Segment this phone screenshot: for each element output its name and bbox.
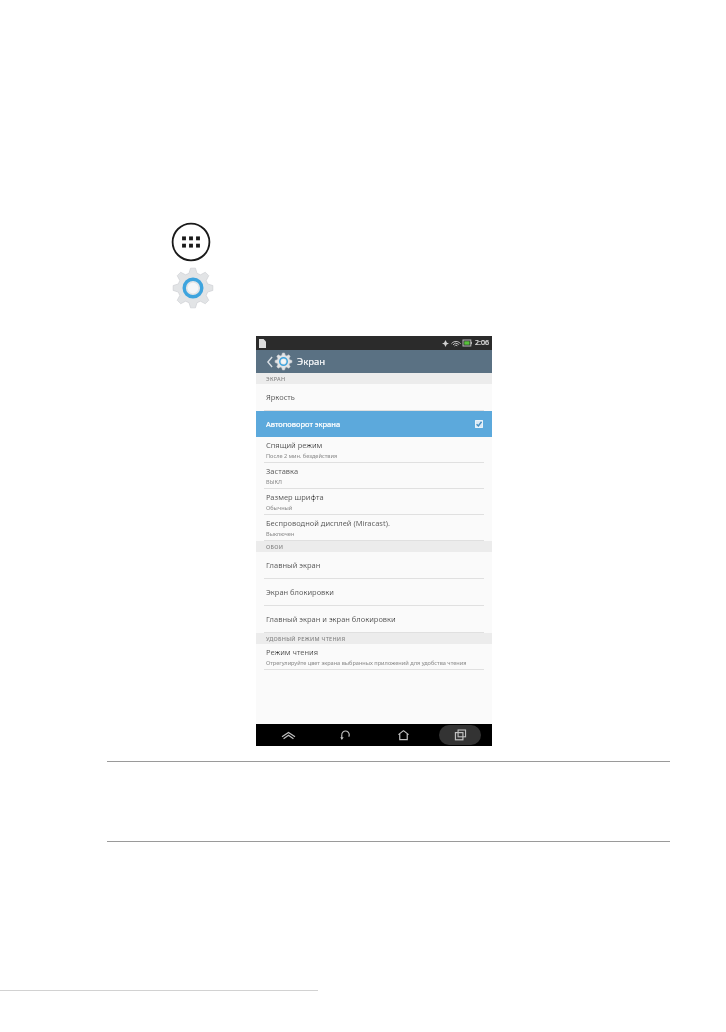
staticText: Размер шрифта [266,492,324,502]
button[interactable]: Recent apps [434,724,486,746]
staticText: Яркость [266,392,295,402]
staticText: ОБОИ [266,543,284,550]
staticText: ВЫКЛ [266,478,282,486]
staticText: Режим чтения [266,647,319,657]
button[interactable]: Спящий режим [256,437,492,463]
staticText: Заставка [266,466,299,476]
button[interactable]: Главный экран и экран блокировки [256,606,492,633]
button[interactable]: Settings [173,268,213,308]
button[interactable]: Quick settings [262,724,314,746]
staticText: Главный экран [266,560,321,570]
staticText: После 2 мин. бездействия [266,452,338,460]
staticText: Выключен [266,530,295,538]
staticText: Обычный [266,504,293,512]
button[interactable]: Яркость [256,384,492,411]
button[interactable]: All apps [171,222,211,262]
staticText: Автоповорот экрана [266,419,475,429]
staticText: УДОБНЫЙ РЕЖИМ ЧТЕНИЯ [266,635,346,642]
staticText: Экран [297,355,326,368]
button[interactable]: Auto-rotate enabled [475,420,483,428]
button[interactable]: Беспроводной дисплей (Miracast). [256,515,492,541]
staticText: Экран блокировки [266,587,334,597]
button[interactable]: Заставка [256,463,492,489]
button[interactable]: Back [319,724,371,746]
staticText: Спящий режим [266,440,323,450]
staticText: ЭКРАН [266,375,286,382]
staticText: Главный экран и экран блокировки [266,614,396,624]
button[interactable]: Главный экран [256,552,492,579]
button[interactable]: Автоповорот экрана [256,411,492,437]
staticText: Отрегулируйте цвет экрана выбранных прил… [266,659,467,667]
button[interactable]: Режим чтения [256,644,492,670]
staticText: Беспроводной дисплей (Miracast). [266,518,390,528]
button[interactable]: Размер шрифта [256,489,492,515]
button[interactable]: Home [377,724,429,746]
staticText: 2:06 [475,338,489,348]
button[interactable]: Экран блокировки [256,579,492,606]
